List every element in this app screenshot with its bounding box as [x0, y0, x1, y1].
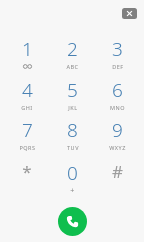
button[interactable]: 1: [4, 36, 50, 69]
button[interactable]: *: [4, 160, 50, 183]
staticText: +: [70, 186, 75, 196]
staticText: DEF: [112, 63, 124, 70]
staticText: #: [112, 160, 123, 183]
button[interactable]: #: [95, 160, 140, 183]
staticText: 5: [67, 77, 78, 103]
staticText: 1: [22, 36, 33, 62]
staticText: *: [22, 160, 32, 183]
staticText: 9: [112, 117, 123, 143]
button[interactable]: 0: [50, 160, 95, 196]
button[interactable]: 6: [95, 77, 140, 111]
button[interactable]: Delete: [122, 8, 137, 19]
staticText: TUV: [67, 144, 79, 151]
staticText: 4: [22, 77, 33, 103]
button[interactable]: 7: [4, 117, 50, 151]
staticText: ABC: [66, 63, 79, 70]
button[interactable]: 5: [50, 77, 95, 111]
staticText: 8: [67, 117, 78, 143]
button[interactable]: 8: [50, 117, 95, 151]
staticText: WXYZ: [109, 144, 126, 151]
button[interactable]: 4: [4, 77, 50, 111]
staticText: 6: [112, 77, 123, 103]
staticText: 3: [112, 36, 123, 62]
staticText: 0: [67, 160, 78, 186]
staticText: 7: [22, 117, 33, 143]
staticText: PQRS: [19, 144, 36, 151]
button[interactable]: 2: [50, 36, 95, 70]
button[interactable]: 3: [95, 36, 140, 70]
staticText: 2: [67, 36, 78, 62]
staticText: JKL: [68, 104, 78, 111]
button[interactable]: 9: [95, 117, 140, 151]
staticText: MNO: [110, 104, 125, 111]
staticText: GHI: [21, 104, 33, 111]
button[interactable]: Call: [58, 207, 87, 236]
